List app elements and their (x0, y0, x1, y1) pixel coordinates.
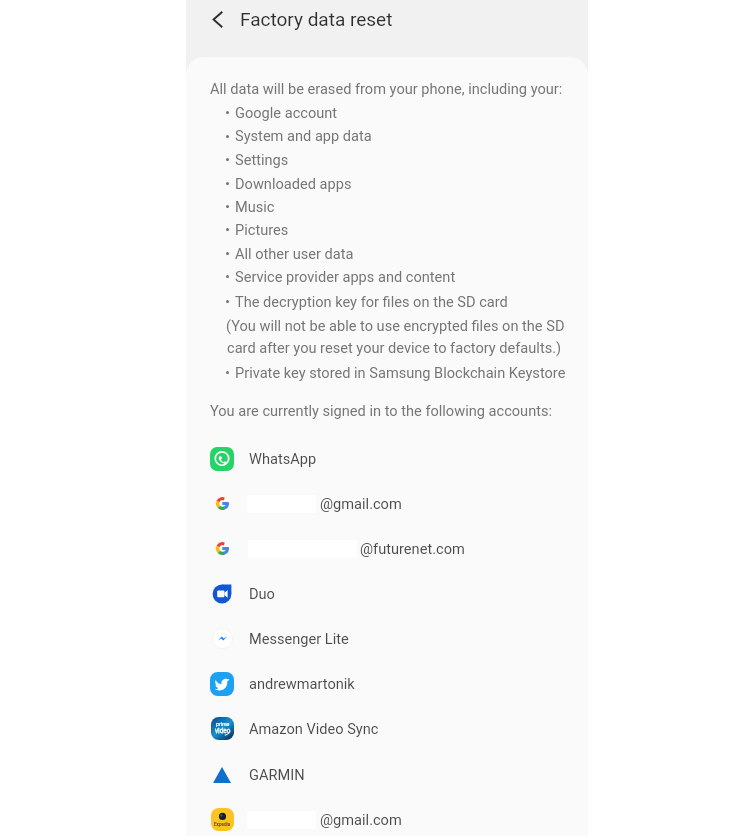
staticText: Pictures (235, 221, 289, 238)
staticText: All other user data (235, 245, 354, 262)
staticText: @futurenet.com (360, 540, 465, 557)
button[interactable]: prime (186, 706, 588, 751)
staticText: prime (216, 721, 230, 727)
staticText: System and app data (235, 127, 372, 144)
button[interactable]: GARMIN (186, 752, 588, 797)
staticText: Downloaded apps (235, 175, 352, 192)
staticText: Factory data reset (240, 8, 393, 30)
button[interactable]: Messenger Lite (186, 616, 588, 661)
button[interactable]: @futurenet.com (186, 526, 588, 571)
button[interactable]: Expedia (186, 797, 588, 836)
staticText: Duo (249, 585, 275, 602)
staticText: Music (235, 198, 275, 215)
staticText: Service provider apps and content (235, 268, 456, 285)
button[interactable]: Navigate up (198, 0, 236, 38)
button[interactable]: WhatsApp (186, 436, 588, 481)
staticText: Google account (235, 104, 338, 121)
button[interactable]: Duo (186, 571, 588, 616)
staticText: GARMIN (249, 766, 305, 783)
staticText: Private key stored in Samsung Blockchain… (235, 364, 566, 381)
staticText: WhatsApp (249, 450, 317, 467)
staticText: You are currently signed in to the follo… (210, 402, 553, 419)
button[interactable]: @gmail.com (186, 481, 588, 526)
staticText: @gmail.com (320, 811, 402, 828)
staticText: Messenger Lite (249, 630, 349, 647)
staticText: Settings (235, 151, 289, 168)
staticText: Expedia (214, 822, 231, 827)
staticText: @gmail.com (320, 495, 402, 512)
staticText: (You will not be able to use encrypted f… (226, 317, 565, 334)
staticText: card after you reset your device to fact… (227, 339, 562, 356)
button[interactable]: andrewmartonik (186, 661, 588, 706)
staticText: video (215, 727, 231, 735)
staticText: The decryption key for files on the SD c… (235, 293, 508, 310)
staticText: andrewmartonik (249, 675, 355, 692)
staticText: All data will be erased from your phone,… (210, 80, 563, 97)
staticText: Amazon Video Sync (249, 720, 379, 737)
